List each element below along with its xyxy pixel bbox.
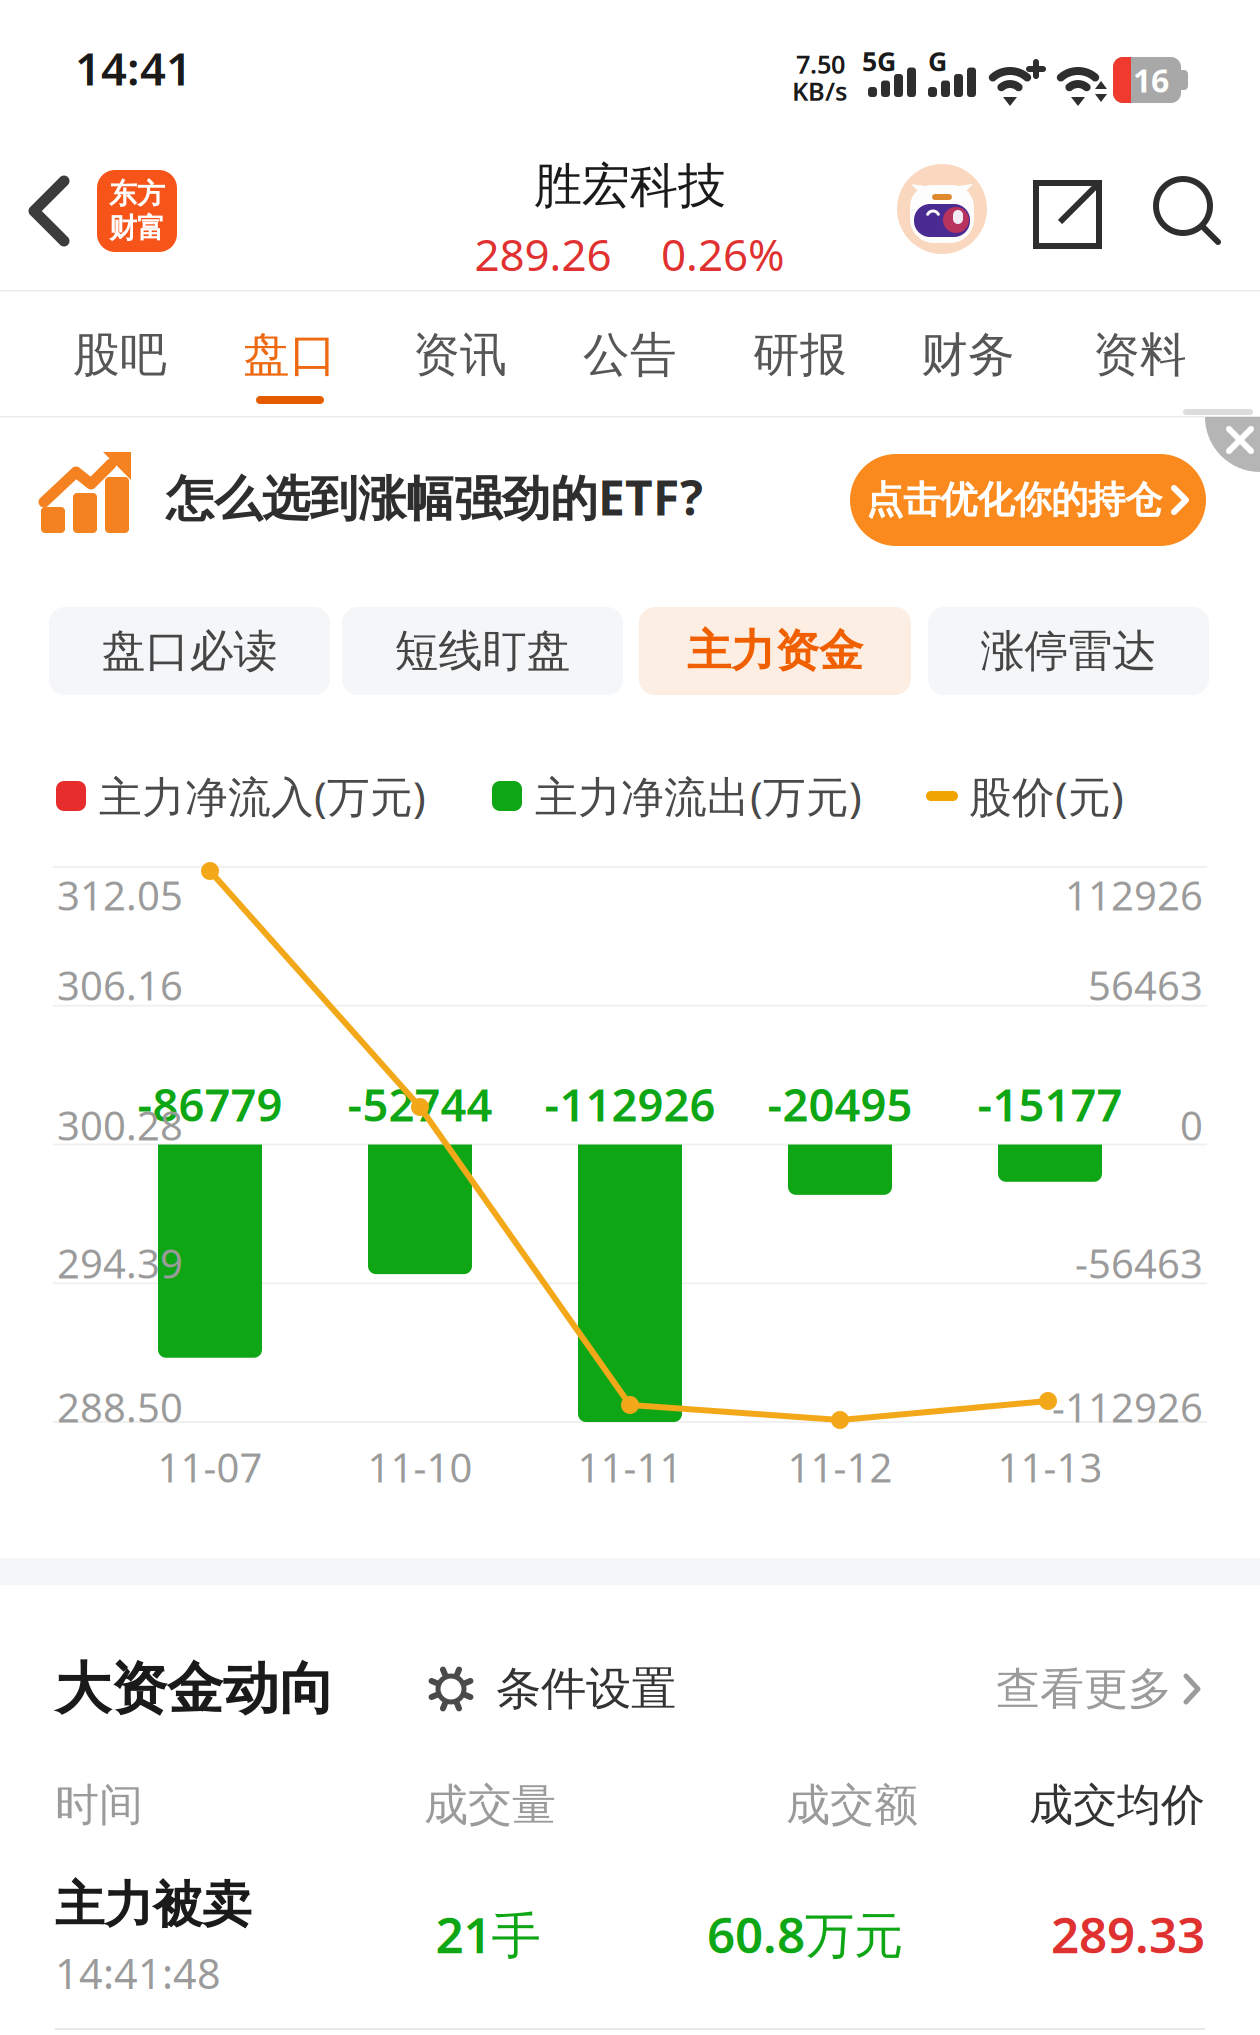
staticText: 时间: [55, 1778, 143, 1832]
button[interactable]: 东方财富: [97, 170, 177, 252]
button[interactable]: 财务: [893, 310, 1043, 400]
staticText: 11-13: [997, 1440, 1102, 1493]
staticText: 11-10: [367, 1440, 472, 1493]
button[interactable]: 股吧: [45, 310, 195, 400]
staticText: 0: [1180, 1098, 1203, 1151]
staticText: 盘口: [243, 326, 337, 384]
staticText: -112926: [1052, 1380, 1203, 1433]
button[interactable]: AI 助手: [896, 163, 988, 255]
staticText: 306.16: [57, 958, 183, 1011]
button[interactable]: Close: [1205, 417, 1260, 472]
button[interactable]: Back: [28, 177, 72, 245]
button[interactable]: 查看更多: [996, 1662, 1200, 1716]
staticText: 胜宏科技: [534, 156, 726, 215]
staticText: 289.26: [474, 225, 611, 283]
staticText: 点击优化你的持仓: [866, 477, 1162, 523]
staticText: 11-11: [577, 1440, 682, 1493]
staticText: 主力净流入(万元): [99, 768, 426, 824]
button[interactable]: 资料: [1065, 310, 1215, 400]
staticText: 大资金动向: [55, 1655, 335, 1723]
staticText: 0.26%: [661, 225, 785, 283]
staticText: 56463: [1088, 958, 1203, 1011]
staticText: 公告: [583, 326, 677, 384]
button[interactable]: 条件设置: [428, 1661, 676, 1717]
button[interactable]: Share: [1033, 180, 1103, 250]
button[interactable]: Search: [1152, 177, 1222, 247]
staticText: 成交量: [424, 1778, 556, 1832]
staticText: 60.8万元: [707, 1901, 903, 1967]
staticText: 资讯: [413, 326, 507, 384]
staticText: -112926: [544, 1074, 715, 1134]
staticText: 11-07: [157, 1440, 262, 1493]
button[interactable]: 研报: [725, 310, 875, 400]
staticText: 财富: [109, 211, 165, 245]
staticText: 294.39: [57, 1236, 183, 1289]
staticText: 盘口必读: [101, 624, 277, 678]
staticText: 112926: [1065, 868, 1203, 921]
button[interactable]: 盘口必读: [49, 607, 330, 695]
staticText: -15177: [977, 1074, 1122, 1134]
button[interactable]: 点击优化你的持仓: [850, 454, 1206, 546]
button[interactable]: 公告: [555, 310, 705, 400]
staticText: 财务: [921, 326, 1015, 384]
button[interactable]: 主力资金: [639, 607, 911, 695]
staticText: 成交额: [786, 1778, 918, 1832]
staticText: 股价(元): [969, 768, 1124, 824]
staticText: 条件设置: [496, 1661, 676, 1717]
staticText: 主力净流出(万元): [535, 768, 862, 824]
staticText: 资料: [1093, 326, 1187, 384]
staticText: 300.28: [57, 1098, 183, 1151]
staticText: 涨停雷达: [980, 624, 1156, 678]
staticText: 14:41: [75, 38, 192, 98]
staticText: 股吧: [73, 326, 167, 384]
staticText: 312.05: [57, 868, 183, 921]
staticText: 289.33: [1051, 1901, 1205, 1967]
staticText: 东方: [109, 177, 165, 211]
staticText: 11-12: [787, 1440, 892, 1493]
staticText: 288.50: [57, 1380, 183, 1433]
staticText: 成交均价: [1029, 1778, 1205, 1832]
staticText: G: [928, 43, 947, 79]
staticText: 16: [1133, 59, 1169, 101]
staticText: -56463: [1075, 1236, 1203, 1289]
staticText: 研报: [753, 326, 847, 384]
staticText: 查看更多: [996, 1662, 1172, 1716]
staticText: 14:41:48: [55, 1946, 221, 2000]
staticText: 短线盯盘: [394, 624, 570, 678]
staticText: 21手: [435, 1901, 540, 1967]
staticText: 5G: [862, 43, 896, 79]
staticText: -86779: [137, 1074, 282, 1134]
staticText: 主力资金: [687, 624, 863, 678]
staticText: -20495: [767, 1074, 912, 1134]
button[interactable]: 涨停雷达: [928, 607, 1209, 695]
staticText: 7.50: [796, 47, 845, 81]
staticText: 怎么选到涨幅强劲的ETF?: [166, 465, 703, 529]
button[interactable]: 资讯: [385, 310, 535, 400]
button[interactable]: 短线盯盘: [342, 607, 623, 695]
button[interactable]: 盘口: [215, 310, 365, 400]
staticText: KB/s: [792, 74, 847, 108]
staticText: 主力被卖: [55, 1875, 251, 1935]
staticText: -52744: [347, 1074, 492, 1134]
